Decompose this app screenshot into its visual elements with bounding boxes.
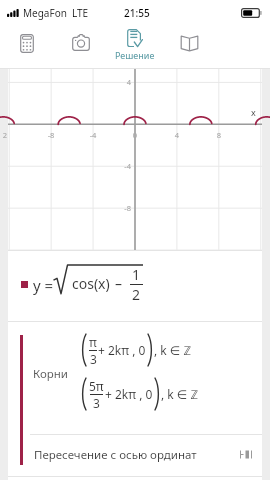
staticText: cos(x) bbox=[72, 274, 110, 293]
button[interactable]: Textbook bbox=[162, 26, 216, 68]
staticText: + 2kπ , 0 bbox=[105, 386, 153, 402]
staticText: + 2kπ , 0 bbox=[98, 342, 146, 358]
staticText: – bbox=[115, 274, 122, 293]
staticText: 5π bbox=[89, 378, 104, 394]
staticText: 3 bbox=[93, 395, 100, 411]
staticText: MegaFon bbox=[23, 6, 67, 20]
staticText: 1 bbox=[132, 265, 141, 284]
staticText: 2 bbox=[132, 285, 141, 304]
staticText: x bbox=[251, 106, 256, 118]
staticText: π bbox=[89, 334, 97, 350]
button[interactable]: Solution bbox=[108, 26, 162, 68]
staticText: 4 bbox=[111, 77, 131, 87]
button[interactable]: Корни bbox=[8, 322, 262, 434]
staticText: 21:55 bbox=[124, 6, 150, 20]
staticText: Пересечение с осью ординат bbox=[34, 447, 197, 463]
staticText: y = bbox=[33, 275, 54, 295]
staticText: -4 bbox=[111, 161, 131, 171]
staticText: , k ∈ ℤ bbox=[154, 342, 191, 358]
staticText: -8 bbox=[111, 203, 131, 213]
staticText: 4 bbox=[167, 130, 187, 140]
staticText: LTE bbox=[72, 6, 89, 20]
staticText: 0 bbox=[125, 130, 145, 140]
staticText: , k ∈ ℤ bbox=[161, 386, 198, 402]
staticText: Корни bbox=[33, 366, 68, 382]
button[interactable]: y = bbox=[8, 251, 262, 321]
button[interactable]: Calculator bbox=[0, 26, 54, 68]
staticText: 3 bbox=[90, 351, 97, 367]
button[interactable]: Пересечение с осью ординат bbox=[8, 435, 262, 476]
staticText: -4 bbox=[83, 130, 103, 140]
button[interactable]: Camera bbox=[54, 26, 108, 68]
staticText: 2 bbox=[0, 130, 15, 140]
staticText: Решение bbox=[115, 49, 155, 61]
staticText: 8 bbox=[209, 130, 229, 140]
staticText: -8 bbox=[41, 130, 61, 140]
